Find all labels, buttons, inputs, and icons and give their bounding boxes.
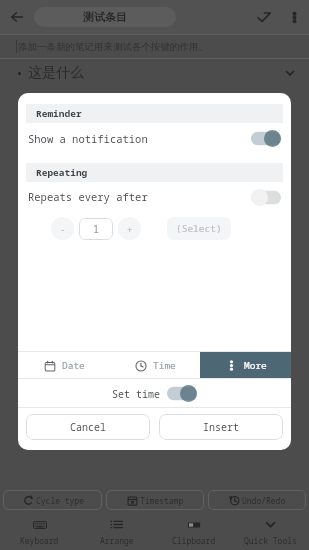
staticText: -	[60, 223, 66, 235]
button[interactable]: 这是什么	[0, 59, 309, 87]
staticText: Clipboard	[172, 535, 216, 546]
button[interactable]: Quick Tools	[232, 513, 309, 550]
button[interactable]: Set time	[108, 382, 201, 405]
staticText: More	[244, 359, 267, 372]
staticText: Cancel	[70, 420, 106, 434]
button[interactable]: Timestamp	[106, 490, 204, 510]
button[interactable]: 测试条目	[34, 7, 176, 27]
button[interactable]: Arrange	[78, 513, 155, 550]
button[interactable]: (Select)	[167, 217, 231, 240]
staticText: Repeats every after	[28, 190, 148, 204]
staticText: 这是什么	[28, 64, 84, 82]
staticText: Reminder	[36, 107, 82, 120]
button[interactable]: Date	[18, 352, 109, 378]
button[interactable]: 1	[79, 218, 113, 240]
button[interactable]: Undo/Redo	[208, 490, 306, 510]
staticText: Set time	[112, 387, 160, 401]
staticText: (Select)	[176, 222, 222, 235]
button[interactable]: Cancel	[26, 414, 150, 440]
staticText: Keyboard	[20, 535, 59, 546]
button[interactable]: Toggle off	[251, 189, 281, 206]
staticText: Arrange	[100, 535, 134, 546]
button[interactable]: Done	[247, 1, 279, 33]
staticText: Date	[62, 359, 85, 372]
button[interactable]: Toggle on	[251, 130, 281, 147]
button[interactable]: More	[200, 352, 291, 378]
staticText: Quick Tools	[244, 535, 297, 546]
staticText: Timestamp	[140, 495, 184, 506]
button[interactable]: Clipboard	[155, 513, 232, 550]
staticText: Show a notification	[28, 132, 148, 146]
button[interactable]: -	[51, 217, 74, 240]
button[interactable]: Repeats every after	[18, 182, 291, 212]
staticText: Cycle type	[36, 495, 84, 506]
staticText: Insert	[203, 420, 239, 434]
staticText: Repeating	[36, 166, 88, 179]
button[interactable]: Back	[0, 0, 34, 34]
button[interactable]: Insert	[159, 414, 283, 440]
staticText: 测试条目	[83, 10, 127, 24]
staticText: Time	[153, 359, 176, 372]
staticText: 添加一条新的笔记用来测试各个按键的作用。	[18, 41, 208, 53]
button[interactable]: Cycle type	[3, 490, 102, 510]
button[interactable]: More options	[279, 2, 309, 32]
staticText: Undo/Redo	[242, 495, 286, 506]
button[interactable]: Show a notification	[18, 123, 291, 154]
button[interactable]: Time	[109, 352, 200, 378]
button[interactable]: +	[118, 217, 141, 240]
staticText: +	[127, 223, 133, 235]
button[interactable]: Keyboard	[0, 513, 78, 550]
staticText: 1	[93, 222, 99, 236]
button[interactable]: Toggle on	[167, 385, 197, 402]
